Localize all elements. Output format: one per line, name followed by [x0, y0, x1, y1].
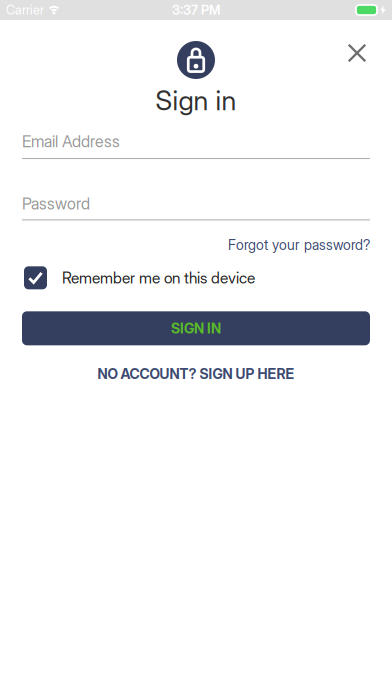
- staticText: Remember me on this device: [62, 268, 255, 287]
- button[interactable]: Password: [22, 194, 370, 220]
- button[interactable]: Close: [340, 36, 374, 70]
- staticText: Sign in: [155, 84, 236, 117]
- staticText: Password: [22, 194, 90, 213]
- button[interactable]: Email Address: [22, 132, 370, 159]
- button[interactable]: SIGN IN: [22, 311, 370, 345]
- staticText: Email Address: [22, 132, 120, 151]
- button[interactable]: Remember me on this device: [24, 266, 255, 289]
- staticText: 3:37 PM: [172, 2, 220, 18]
- button[interactable]: Forgot your password?: [228, 236, 370, 253]
- staticText: NO ACCOUNT? SIGN UP HERE: [97, 365, 294, 382]
- button[interactable]: NO ACCOUNT? SIGN UP HERE: [97, 365, 294, 382]
- staticText: SIGN IN: [171, 320, 221, 337]
- staticText: Forgot your password?: [228, 236, 370, 253]
- staticText: Carrier: [6, 2, 44, 18]
